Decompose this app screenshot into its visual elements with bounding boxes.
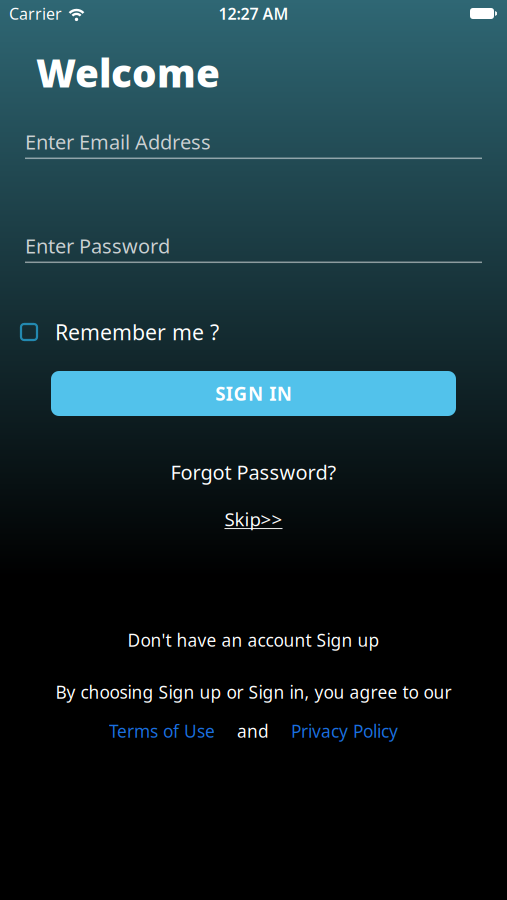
staticText: Welcome: [36, 47, 220, 98]
staticText: Enter Email Address: [25, 129, 211, 155]
button[interactable]: Don't have an account Sign up: [127, 628, 379, 651]
button[interactable]: Enter Password: [25, 233, 482, 263]
button[interactable]: Terms of Use: [109, 719, 215, 742]
staticText: Terms of Use: [109, 719, 215, 742]
button[interactable]: Privacy Policy: [291, 719, 398, 742]
staticText: 12:27 AM: [218, 3, 288, 24]
button[interactable]: Enter Email Address: [25, 129, 482, 159]
staticText: SIGN IN: [215, 381, 292, 406]
staticText: Forgot Password?: [170, 459, 336, 485]
staticText: and: [237, 719, 269, 742]
staticText: Carrier: [9, 3, 62, 24]
staticText: Enter Password: [25, 233, 170, 259]
staticText: Don't have an account Sign up: [127, 628, 379, 651]
staticText: Skip>>: [224, 507, 282, 531]
button[interactable]: Skip>>: [224, 507, 282, 531]
staticText: Privacy Policy: [291, 719, 398, 742]
staticText: By choosing Sign up or Sign in, you agre…: [55, 680, 451, 703]
button[interactable]: Remember me ?: [21, 318, 486, 346]
button[interactable]: Forgot Password?: [170, 459, 336, 485]
button[interactable]: SIGN IN: [51, 371, 456, 416]
staticText: Remember me ?: [55, 318, 219, 346]
